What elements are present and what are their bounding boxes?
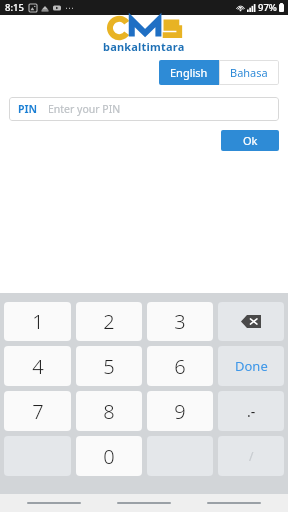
button[interactable]: 0 bbox=[76, 436, 142, 476]
button[interactable]: Navigation button 2 bbox=[116, 494, 172, 512]
staticText: 1 bbox=[32, 308, 44, 335]
button[interactable]: PIN bbox=[9, 97, 279, 121]
staticText: bankaltimtara bbox=[103, 39, 185, 54]
button[interactable]: Backspace bbox=[218, 302, 284, 341]
button[interactable]: 7 bbox=[4, 391, 71, 431]
staticText: 9 bbox=[174, 398, 186, 425]
staticText: English bbox=[170, 65, 208, 80]
button[interactable]: 4 bbox=[4, 346, 71, 386]
button[interactable]: Navigation button 1 bbox=[26, 494, 82, 512]
staticText: 5 bbox=[103, 353, 115, 380]
staticText: 7 bbox=[32, 398, 44, 425]
staticText: / bbox=[249, 448, 254, 464]
staticText: Done bbox=[235, 357, 268, 375]
button[interactable]: 3 bbox=[147, 302, 213, 341]
staticText: 3 bbox=[174, 308, 186, 335]
staticText: Enter your PIN bbox=[48, 102, 121, 116]
staticText: 97% bbox=[258, 1, 277, 14]
button[interactable]: Navigation button 3 bbox=[206, 494, 262, 512]
staticText: 4 bbox=[32, 353, 44, 380]
staticText: 8 bbox=[103, 398, 115, 425]
staticText: Ok bbox=[243, 133, 258, 148]
staticText: 0 bbox=[103, 443, 115, 470]
button[interactable]: 9 bbox=[147, 391, 213, 431]
button[interactable]: Done bbox=[218, 346, 284, 386]
staticText: 6 bbox=[174, 353, 186, 380]
button[interactable]: Dot and dash bbox=[218, 391, 284, 431]
button[interactable]: 6 bbox=[147, 346, 213, 386]
button[interactable]: Ok bbox=[221, 130, 279, 151]
button[interactable]: 1 bbox=[4, 302, 71, 341]
button[interactable]: 8 bbox=[76, 391, 142, 431]
staticText: ⋯ bbox=[65, 3, 74, 13]
staticText: .- bbox=[247, 402, 256, 421]
button[interactable]: 5 bbox=[76, 346, 142, 386]
staticText: 2 bbox=[103, 308, 115, 335]
staticText: Bahasa bbox=[230, 65, 268, 80]
staticText: PIN bbox=[18, 102, 38, 116]
button[interactable]: Bahasa bbox=[219, 60, 279, 85]
button[interactable]: 2 bbox=[76, 302, 142, 341]
button[interactable]: English bbox=[159, 60, 219, 85]
staticText: 8:15 bbox=[5, 1, 24, 14]
